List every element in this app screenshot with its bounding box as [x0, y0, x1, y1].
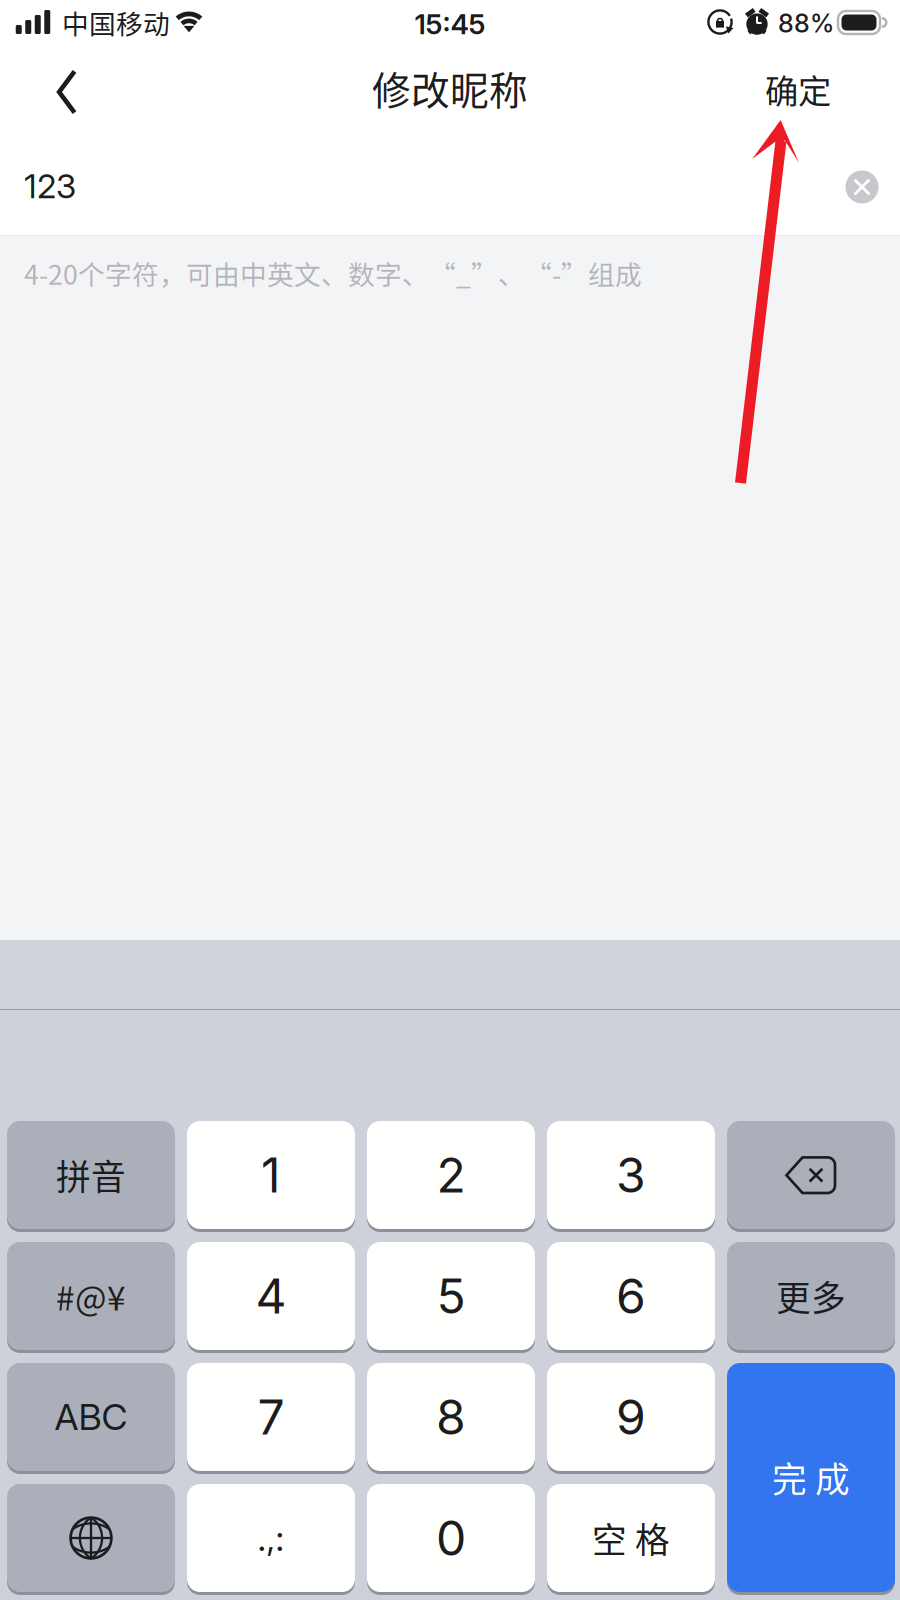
staticText: 确定 [765, 65, 831, 113]
button[interactable]: 更多 [727, 1242, 895, 1353]
button[interactable]: Back [22, 56, 112, 128]
staticText: 1 [261, 1146, 281, 1204]
button[interactable]: 拼音 [7, 1121, 175, 1232]
button[interactable]: .,: [187, 1484, 355, 1595]
staticText: 中国移动 [62, 3, 170, 42]
staticText: 3 [616, 1146, 646, 1204]
staticText: 4 [255, 1267, 286, 1325]
staticText: 4-20个字符，可由中英文、数字、“_”、“-”组成 [24, 254, 642, 292]
staticText: 5 [436, 1267, 465, 1325]
staticText: 0 [436, 1509, 466, 1567]
staticText: 7 [257, 1388, 284, 1446]
button[interactable]: 6 [547, 1242, 715, 1353]
button[interactable]: 8 [367, 1363, 535, 1474]
staticText: 15:45 [414, 7, 485, 41]
button[interactable]: 0 [367, 1484, 535, 1595]
button[interactable]: 2 [367, 1121, 535, 1232]
staticText: 6 [616, 1267, 646, 1325]
button[interactable]: 完 成 [727, 1363, 895, 1595]
staticText: 2 [436, 1146, 465, 1204]
button[interactable]: Switch keyboard [7, 1484, 175, 1595]
staticText: 修改昵称 [372, 60, 528, 116]
staticText: 9 [616, 1388, 646, 1446]
staticText: .,: [257, 1516, 284, 1560]
button[interactable]: 4 [187, 1242, 355, 1353]
staticText: 8 [436, 1388, 466, 1446]
button[interactable]: #@¥ [7, 1242, 175, 1353]
button[interactable]: 9 [547, 1363, 715, 1474]
button[interactable]: 确定 [733, 53, 863, 125]
button[interactable]: 1 [187, 1121, 355, 1232]
staticText: 空 格 [592, 1513, 670, 1563]
button[interactable]: 3 [547, 1121, 715, 1232]
staticText: 88% [778, 8, 834, 39]
button[interactable]: 7 [187, 1363, 355, 1474]
button[interactable]: ABC [7, 1363, 175, 1474]
staticText: 完 成 [772, 1452, 850, 1503]
staticText: #@¥ [56, 1272, 126, 1320]
staticText: 更多 [776, 1271, 846, 1321]
button[interactable]: 5 [367, 1242, 535, 1353]
staticText: ABC [54, 1395, 127, 1439]
button[interactable]: Clear text [827, 152, 897, 222]
staticText: 123 [24, 166, 76, 206]
staticText: 拼音 [56, 1150, 126, 1200]
button[interactable]: 空 格 [547, 1484, 715, 1595]
button[interactable]: Delete [727, 1121, 895, 1232]
